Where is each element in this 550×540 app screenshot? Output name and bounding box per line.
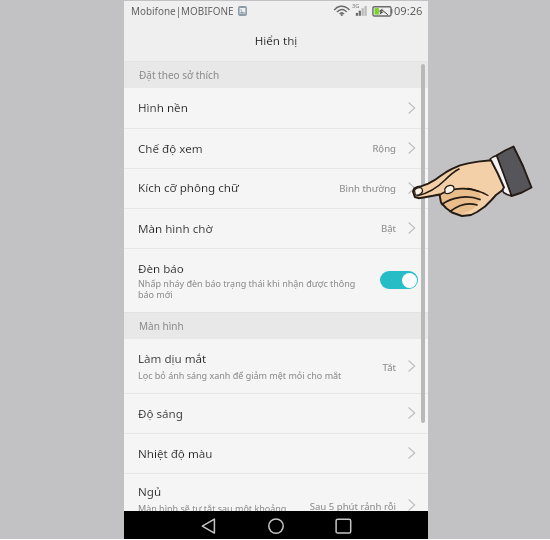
button[interactable]: Chế độ xem [124,128,428,168]
staticText: Đặt theo sở thích [139,68,220,82]
staticText: Độ sáng [138,406,183,422]
button[interactable]: Làm dịu mắt [124,339,428,393]
button[interactable]: Kích cỡ phông chữ [124,168,428,208]
button[interactable]: Đèn báo [124,248,428,313]
staticText: Bình thường [124,182,396,195]
staticText: Làm dịu mắt [138,351,207,367]
staticText: Màn hình sẽ tự tắt sau một khoảng [138,502,287,514]
button[interactable]: Recent apps [316,511,371,539]
button[interactable]: Ngủ [124,473,428,510]
staticText: Chế độ xem [138,141,203,157]
button[interactable]: Back [184,511,239,539]
staticText: Nhiệt độ màu [138,446,213,462]
staticText: Ngủ [138,484,162,500]
staticText: 3G [352,2,360,10]
button[interactable]: Màn hình chờ [124,208,428,248]
button[interactable]: Đèn báo, đang bật [380,271,418,289]
staticText: Sau 5 phút rảnh rỗi [124,500,396,513]
staticText: 09:26 [394,3,423,18]
staticText: Tắt [124,361,396,374]
staticText: Hình nền [138,100,188,116]
staticText: Màn hình chờ [138,221,213,237]
staticText: Nhấp nháy đèn báo trạng thái khi nhận đư… [138,277,356,289]
staticText: Đèn báo [138,261,184,277]
button[interactable]: Nhiệt độ màu [124,433,428,473]
staticText: Lọc bỏ ánh sáng xanh để giảm mệt mỏi cho… [138,369,342,381]
button[interactable]: Home [249,511,304,539]
staticText: Bật [124,222,396,235]
button[interactable]: Hình nền [124,88,428,129]
staticText: báo mới [138,288,173,300]
staticText: Màn hình [139,319,184,333]
staticText: Hiển thị [124,33,428,49]
button[interactable]: Độ sáng [124,393,428,433]
staticText: Rộng [124,142,396,155]
staticText: Kích cỡ phông chữ [138,180,239,196]
staticText: Mobifone|MOBIFONE [131,4,234,17]
